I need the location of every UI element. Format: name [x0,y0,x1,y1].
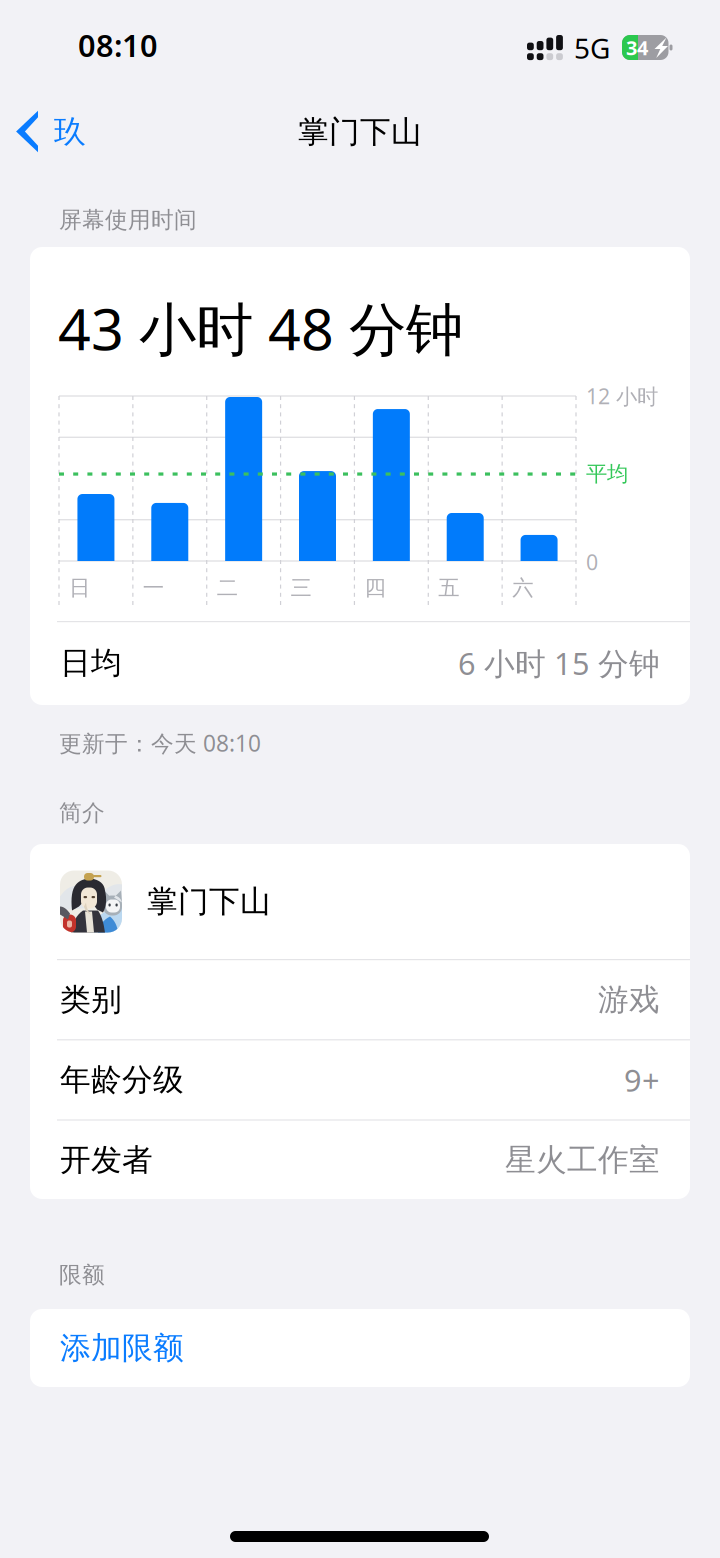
staticText: 限额 [59,1261,105,1289]
staticText: 日均 [60,644,122,682]
staticText: 三 [291,575,312,601]
staticText: 二 [217,575,238,601]
staticText: 掌门下山 [298,113,422,151]
staticText: 6 小时 15 分钟 [458,643,660,683]
staticText: 游戏 [598,981,660,1019]
staticText: 五 [438,575,459,601]
button[interactable]: 添加限额 [30,1309,690,1387]
staticText: 年龄分级 [60,1061,184,1099]
staticText: 34 [626,34,648,61]
staticText: 开发者 [60,1141,153,1179]
staticText: 掌门下山 [147,883,271,920]
staticText: 六 [512,575,533,601]
staticText: 平均 [586,461,628,487]
button[interactable]: 玖 [0,92,132,172]
staticText: 添加限额 [60,1329,184,1367]
staticText: 12 小时 [586,382,658,410]
staticText: 08:10 [78,25,158,65]
staticText: 5G [574,29,610,67]
staticText: 43 小时 48 分钟 [58,290,463,366]
staticText: 日 [69,575,90,601]
staticText: 玖 [54,112,86,152]
staticText: 一 [143,575,164,601]
staticText: 0 [586,548,598,576]
staticText: 9+ [624,1059,660,1100]
staticText: 类别 [60,981,122,1019]
staticText: 更新于：今天 08:10 [59,728,261,758]
staticText: 屏幕使用时间 [59,206,197,234]
staticText: 简介 [59,799,105,827]
staticText: 四 [364,575,385,601]
staticText: 星火工作室 [505,1141,660,1179]
